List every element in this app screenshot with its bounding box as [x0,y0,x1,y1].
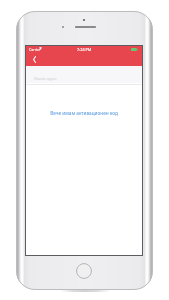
staticText: Имейл адрес [34,76,57,81]
button[interactable]: Home [76,263,92,279]
staticText: 7:24 PM [77,47,92,52]
staticText: Carrier [29,47,41,52]
staticText: Вече имам активационен код [50,110,118,116]
button[interactable]: Вече имам активационен код [26,108,142,118]
button[interactable]: Back [28,55,40,67]
